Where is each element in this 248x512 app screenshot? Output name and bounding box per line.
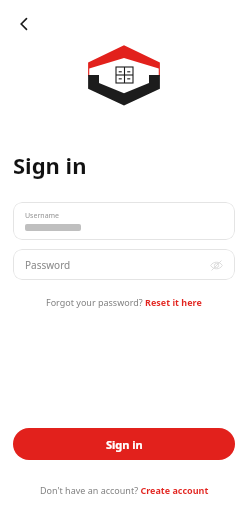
button[interactable]: Back: [8, 8, 40, 40]
staticText: Sign in: [13, 150, 87, 180]
staticText: Sign in: [106, 437, 143, 452]
button[interactable]: Password: [13, 249, 235, 280]
button[interactable]: Forgot your password? Reset it here: [40, 294, 208, 310]
staticText: Forgot your password? Reset it here: [46, 296, 202, 308]
button[interactable]: Sign in: [13, 428, 235, 460]
button[interactable]: Username: [13, 202, 235, 240]
button[interactable]: Don't have an account? Create account: [34, 482, 215, 498]
staticText: Don't have an account? Create account: [40, 484, 209, 496]
staticText: Password: [25, 258, 71, 272]
button[interactable]: Show password: [207, 256, 225, 274]
staticText: Username: [25, 211, 60, 221]
